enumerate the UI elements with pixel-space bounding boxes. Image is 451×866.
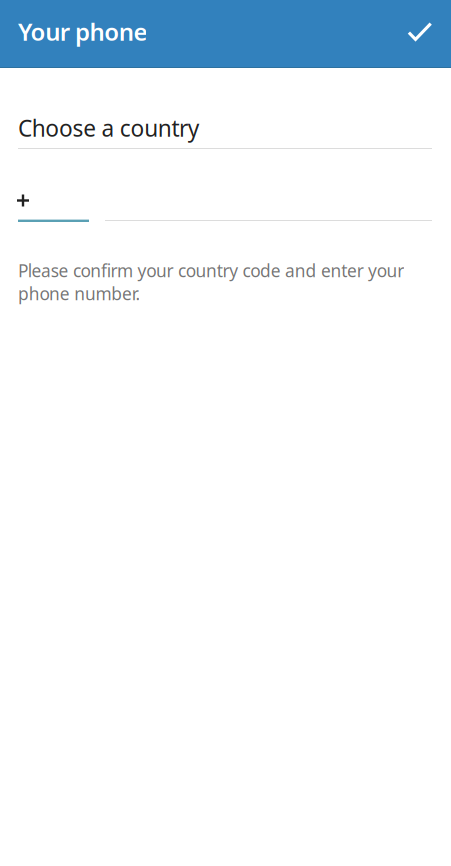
staticText: Please confirm your country code and ent… xyxy=(18,259,404,305)
button[interactable]: Done xyxy=(397,10,443,56)
staticText: Choose a country xyxy=(18,113,200,143)
staticText: Your phone xyxy=(18,16,147,47)
button[interactable]: Phone number xyxy=(105,185,432,221)
button[interactable]: Choose a country xyxy=(18,111,432,149)
button[interactable]: Country code xyxy=(18,185,89,222)
